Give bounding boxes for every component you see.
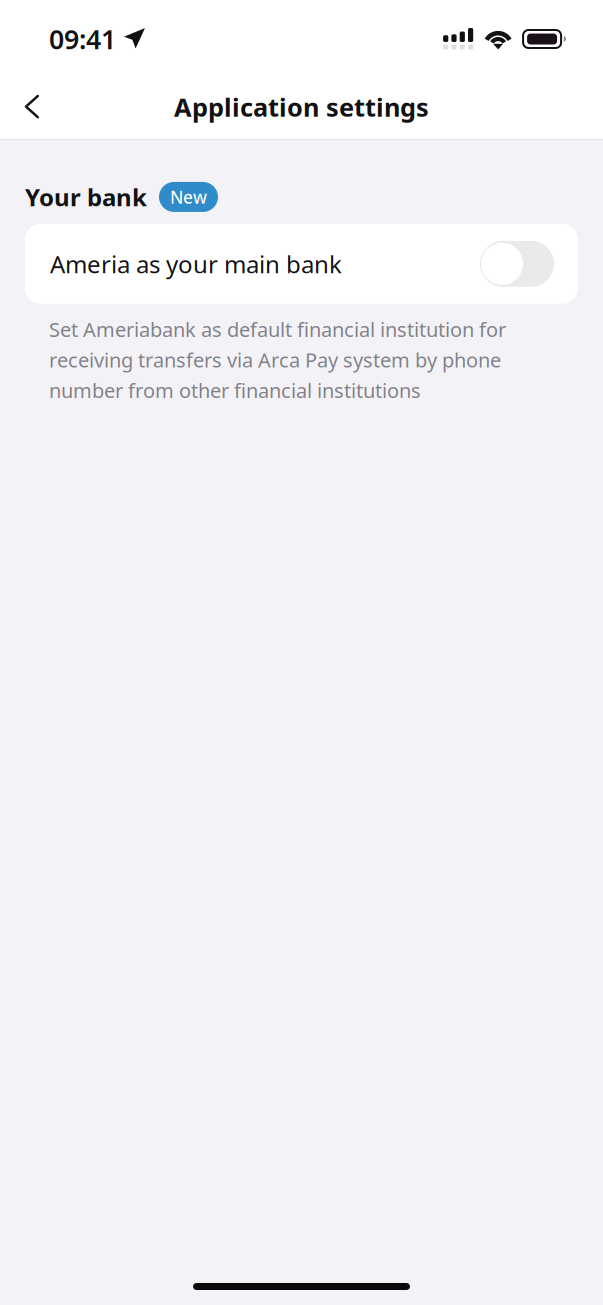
button[interactable]: Ameria as your main bank [0,224,603,304]
staticText: New [170,185,207,208]
staticText: 09:41 [49,21,116,57]
staticText: Set Ameriabank as default financial inst… [49,316,506,404]
staticText: Application settings [174,90,429,124]
staticText: Ameria as your main bank [50,248,342,280]
staticText: Your bank [25,181,147,213]
button[interactable]: Back [15,82,50,132]
